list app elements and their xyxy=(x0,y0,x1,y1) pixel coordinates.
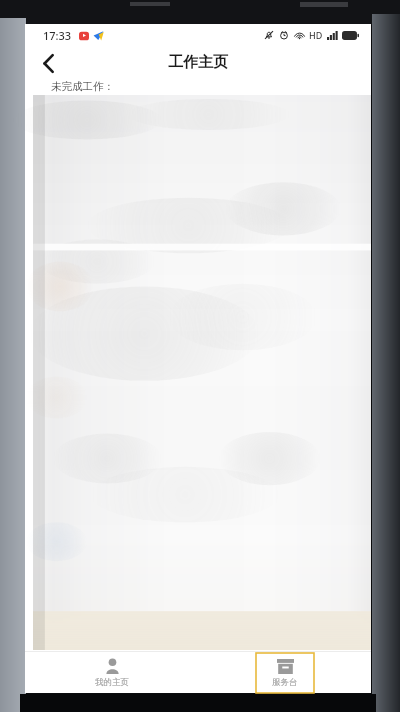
staticText: 17:33 xyxy=(43,28,72,43)
staticText: 我的主页 xyxy=(95,677,129,688)
staticText: 服务台 xyxy=(272,677,298,688)
button[interactable]: Back xyxy=(32,47,64,79)
button[interactable]: 服务台 xyxy=(256,653,314,693)
staticText: 工作主页 xyxy=(168,53,228,72)
button[interactable]: 我的主页 xyxy=(25,652,198,693)
staticText: HD xyxy=(309,29,323,41)
staticText: 未完成工作： xyxy=(51,80,114,93)
